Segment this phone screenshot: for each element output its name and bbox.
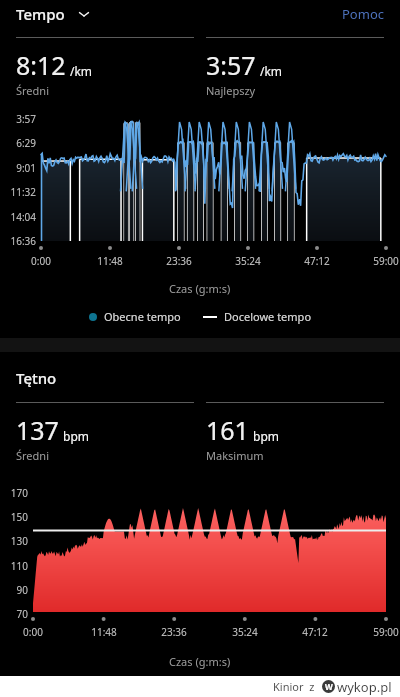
staticText: W <box>325 681 333 692</box>
staticText: 11:48 <box>82 254 138 268</box>
staticText: Maksimum <box>206 448 264 463</box>
staticText: 70 <box>2 607 28 621</box>
staticText: Najlepszy <box>206 83 256 98</box>
button[interactable]: Pomoc <box>340 1 386 27</box>
staticText: /km <box>70 63 93 79</box>
staticText: wykop.pl <box>337 678 392 696</box>
staticText: Docelowe tempo <box>224 309 312 324</box>
staticText: 14:04 <box>2 210 36 224</box>
staticText: Tętno <box>16 368 57 388</box>
staticText: 11:32 <box>2 185 36 199</box>
staticText: 35:24 <box>220 254 276 268</box>
staticText: 35:24 <box>217 625 273 639</box>
staticText: Czas (g:m:s) <box>169 654 231 669</box>
other: Rozwiń <box>77 7 91 21</box>
staticText: 0:00 <box>13 254 69 268</box>
staticText: 23:36 <box>151 254 207 268</box>
staticText: 3:57 <box>206 48 256 82</box>
staticText: 6:29 <box>2 136 36 150</box>
staticText: 16:36 <box>2 234 36 248</box>
staticText: 11:48 <box>76 625 132 639</box>
staticText: 110 <box>2 559 28 573</box>
staticText: Tempo <box>16 4 65 24</box>
staticText: bpm <box>63 428 89 444</box>
staticText: 9:01 <box>2 161 36 175</box>
staticText: 59:00 <box>358 625 400 639</box>
staticText: 150 <box>2 510 28 524</box>
staticText: 170 <box>2 486 28 500</box>
staticText: 0:00 <box>5 625 61 639</box>
staticText: Obecne tempo <box>104 309 181 324</box>
staticText: Średni <box>16 448 49 463</box>
staticText: 47:12 <box>287 625 343 639</box>
staticText: 3:57 <box>2 112 36 126</box>
staticText: Kinior z <box>273 679 315 694</box>
staticText: 8:12 <box>16 48 66 82</box>
staticText: bpm <box>253 428 279 444</box>
staticText: Średni <box>16 83 49 98</box>
staticText: 161 <box>206 413 249 447</box>
staticText: 59:00 <box>358 254 400 268</box>
staticText: Czas (g:m:s) <box>169 281 231 296</box>
button[interactable]: Tempo <box>16 4 95 24</box>
staticText: 130 <box>2 534 28 548</box>
staticText: 90 <box>2 583 28 597</box>
staticText: Pomoc <box>342 5 384 23</box>
staticText: 23:36 <box>146 625 202 639</box>
staticText: 47:12 <box>289 254 345 268</box>
staticText: /km <box>260 63 283 79</box>
staticText: 137 <box>16 413 59 447</box>
